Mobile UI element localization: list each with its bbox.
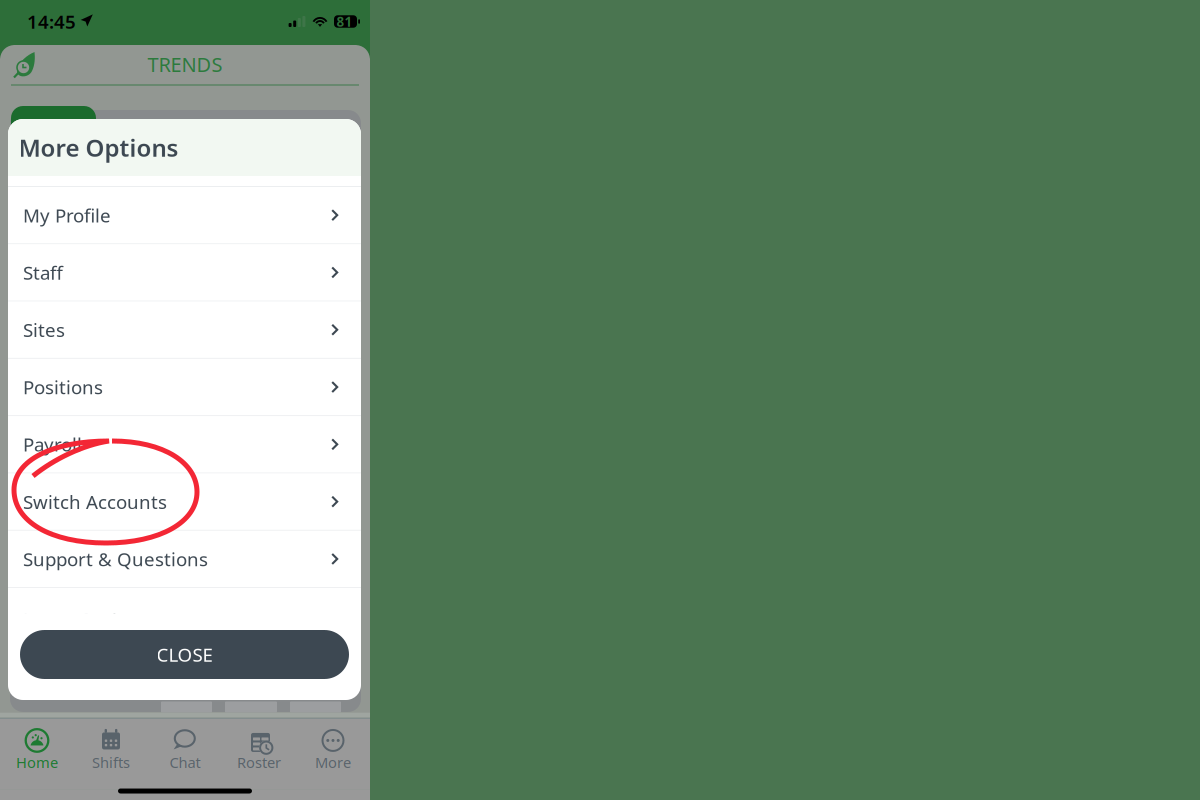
button[interactable]: Home: [0, 728, 74, 780]
staticText: Sites: [23, 317, 65, 342]
button[interactable]: More: [296, 728, 370, 780]
staticText: CLOSE: [156, 642, 212, 667]
button[interactable]: CLOSE: [8, 630, 361, 679]
staticText: Switch Accounts: [23, 489, 167, 514]
staticText: Shifts: [92, 752, 130, 772]
button[interactable]: Positions: [8, 359, 361, 415]
button[interactable]: Sites: [8, 302, 361, 358]
staticText: 14:45: [27, 9, 76, 34]
staticText: Payroll: [23, 432, 82, 457]
staticText: TRENDS: [147, 51, 222, 78]
staticText: Roster: [237, 752, 281, 772]
button[interactable]: Payroll: [8, 416, 361, 472]
staticText: Positions: [23, 375, 103, 399]
button[interactable]: Timesheet: [0, 45, 45, 80]
button[interactable]: Shifts: [74, 728, 148, 780]
button[interactable]: My Profile: [8, 187, 361, 243]
staticText: Leave Options: [23, 607, 149, 632]
button[interactable]: Chat: [148, 728, 222, 780]
staticText: More: [315, 752, 351, 772]
button[interactable]: Roster: [222, 728, 296, 780]
staticText: Staff: [23, 260, 63, 285]
button[interactable]: Staff: [8, 244, 361, 301]
staticText: Home: [16, 752, 58, 772]
staticText: Chat: [169, 752, 200, 772]
staticText: More Options: [18, 132, 178, 163]
staticText: 81: [336, 13, 352, 30]
staticText: My Profile: [23, 203, 111, 228]
staticText: Support & Questions: [23, 547, 208, 571]
button[interactable]: Support & Questions: [8, 531, 361, 587]
button[interactable]: Switch Accounts: [8, 473, 361, 530]
